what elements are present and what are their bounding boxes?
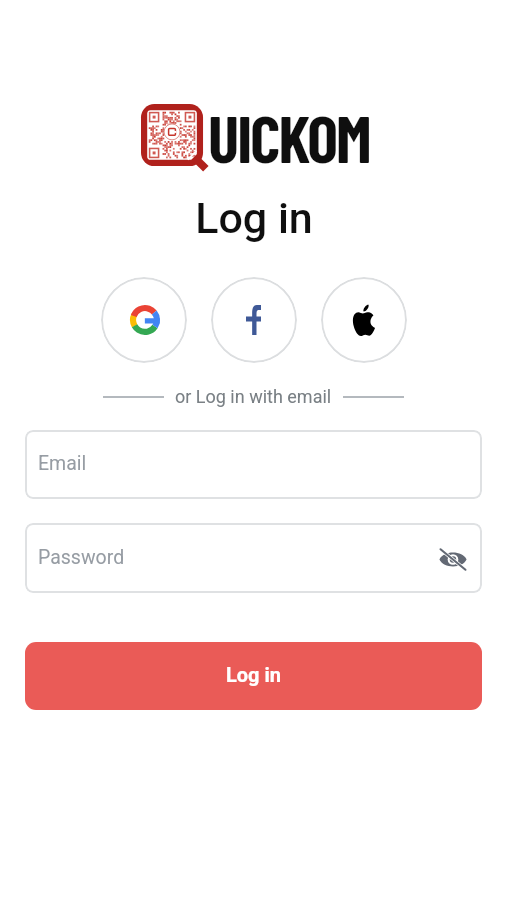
button[interactable]: Sign in with Apple	[321, 277, 407, 363]
button[interactable]: Password	[25, 523, 482, 593]
button[interactable]: Show password	[436, 541, 470, 575]
button[interactable]: Log in	[25, 642, 482, 710]
staticText: or Log in with email	[175, 386, 332, 407]
staticText: Log in	[195, 193, 313, 243]
staticText: Email	[38, 452, 87, 475]
staticText: UICKOM	[208, 98, 370, 176]
button[interactable]: Email	[25, 430, 482, 499]
staticText: Log in	[226, 663, 282, 686]
staticText: Password	[38, 546, 125, 569]
button[interactable]: Sign in with Google	[101, 277, 187, 363]
button[interactable]: Sign in with Facebook	[211, 277, 297, 363]
